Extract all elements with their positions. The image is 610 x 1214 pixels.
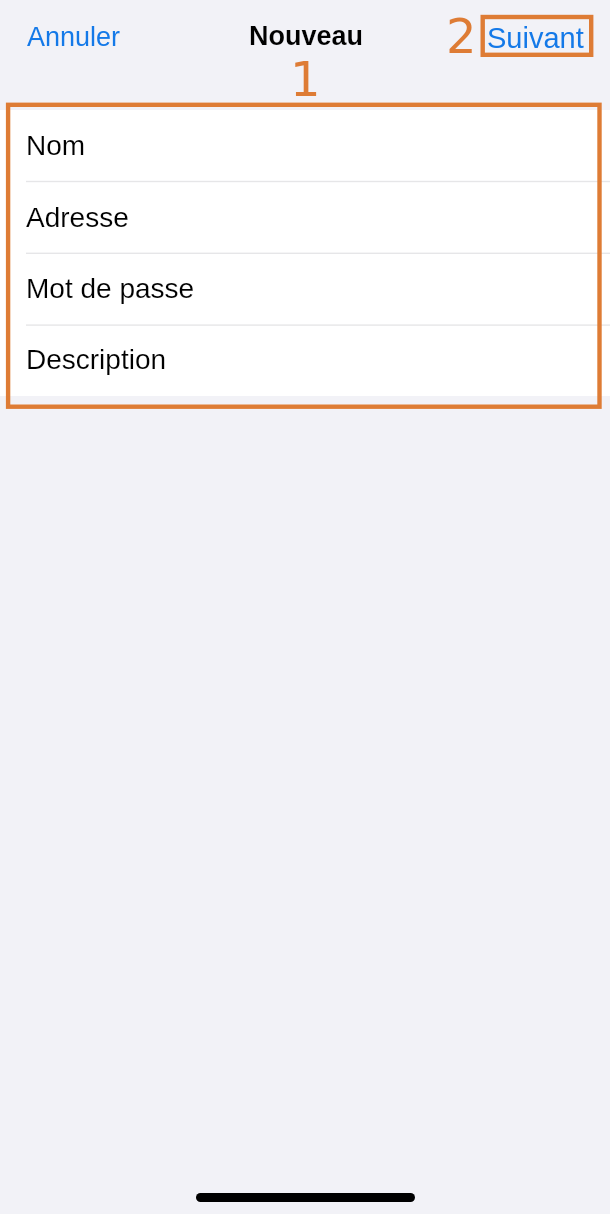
staticText: Nom xyxy=(26,130,86,161)
staticText: Suivant xyxy=(487,22,584,54)
button[interactable]: Suivant xyxy=(481,19,590,57)
button[interactable]: Nom xyxy=(0,110,610,182)
staticText: Adresse xyxy=(26,202,129,233)
button[interactable]: Description xyxy=(0,325,610,396)
staticText: 2 xyxy=(446,8,477,64)
button[interactable]: Annuler xyxy=(19,17,129,57)
staticText: Annuler xyxy=(27,22,121,52)
button[interactable]: Mot de passe xyxy=(0,253,610,325)
staticText: Nouveau xyxy=(249,21,364,51)
staticText: 1 xyxy=(290,51,321,107)
staticText: Description xyxy=(26,344,167,375)
staticText: Mot de passe xyxy=(26,273,195,304)
button[interactable]: Adresse xyxy=(0,182,610,254)
